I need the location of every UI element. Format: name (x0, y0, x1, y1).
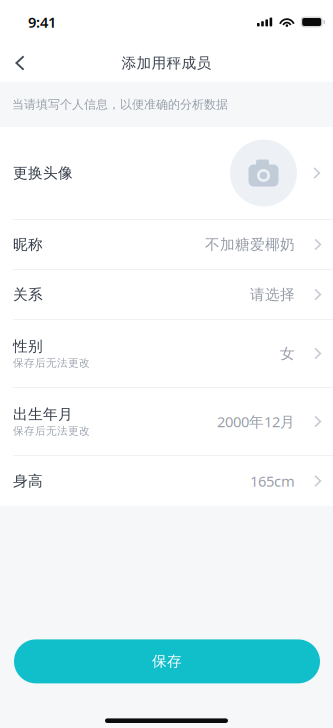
staticText: 身高 (13, 472, 43, 490)
staticText: 保存后无法更改 (13, 424, 90, 438)
staticText: 2000年12月 (217, 412, 295, 431)
staticText: 关系 (13, 285, 43, 303)
button[interactable]: 保存 (14, 639, 320, 683)
staticText: 更换头像 (13, 164, 73, 182)
staticText: 9:41 (28, 12, 56, 32)
button[interactable]: 关系 (0, 270, 333, 319)
button[interactable]: 身高 (0, 456, 333, 506)
button[interactable]: Back (0, 44, 40, 82)
staticText: 出生年月 (13, 405, 73, 423)
staticText: 165cm (250, 471, 295, 491)
staticText: 女 (280, 344, 295, 362)
button[interactable]: 出生年月 (0, 388, 333, 455)
staticText: 请选择 (250, 285, 295, 303)
staticText: 保存后无法更改 (13, 356, 90, 370)
button[interactable]: 昵称 (0, 220, 333, 269)
button[interactable]: 性别 (0, 320, 333, 387)
staticText: 添加用秤成员 (121, 54, 211, 72)
staticText: 当请填写个人信息，以便准确的分析数据 (12, 97, 228, 112)
staticText: 保存 (152, 652, 182, 670)
staticText: 性别 (13, 337, 43, 355)
staticText: 昵称 (13, 235, 43, 253)
staticText: 不加糖爱椰奶 (205, 235, 295, 253)
button[interactable]: 更换头像 (0, 127, 333, 219)
